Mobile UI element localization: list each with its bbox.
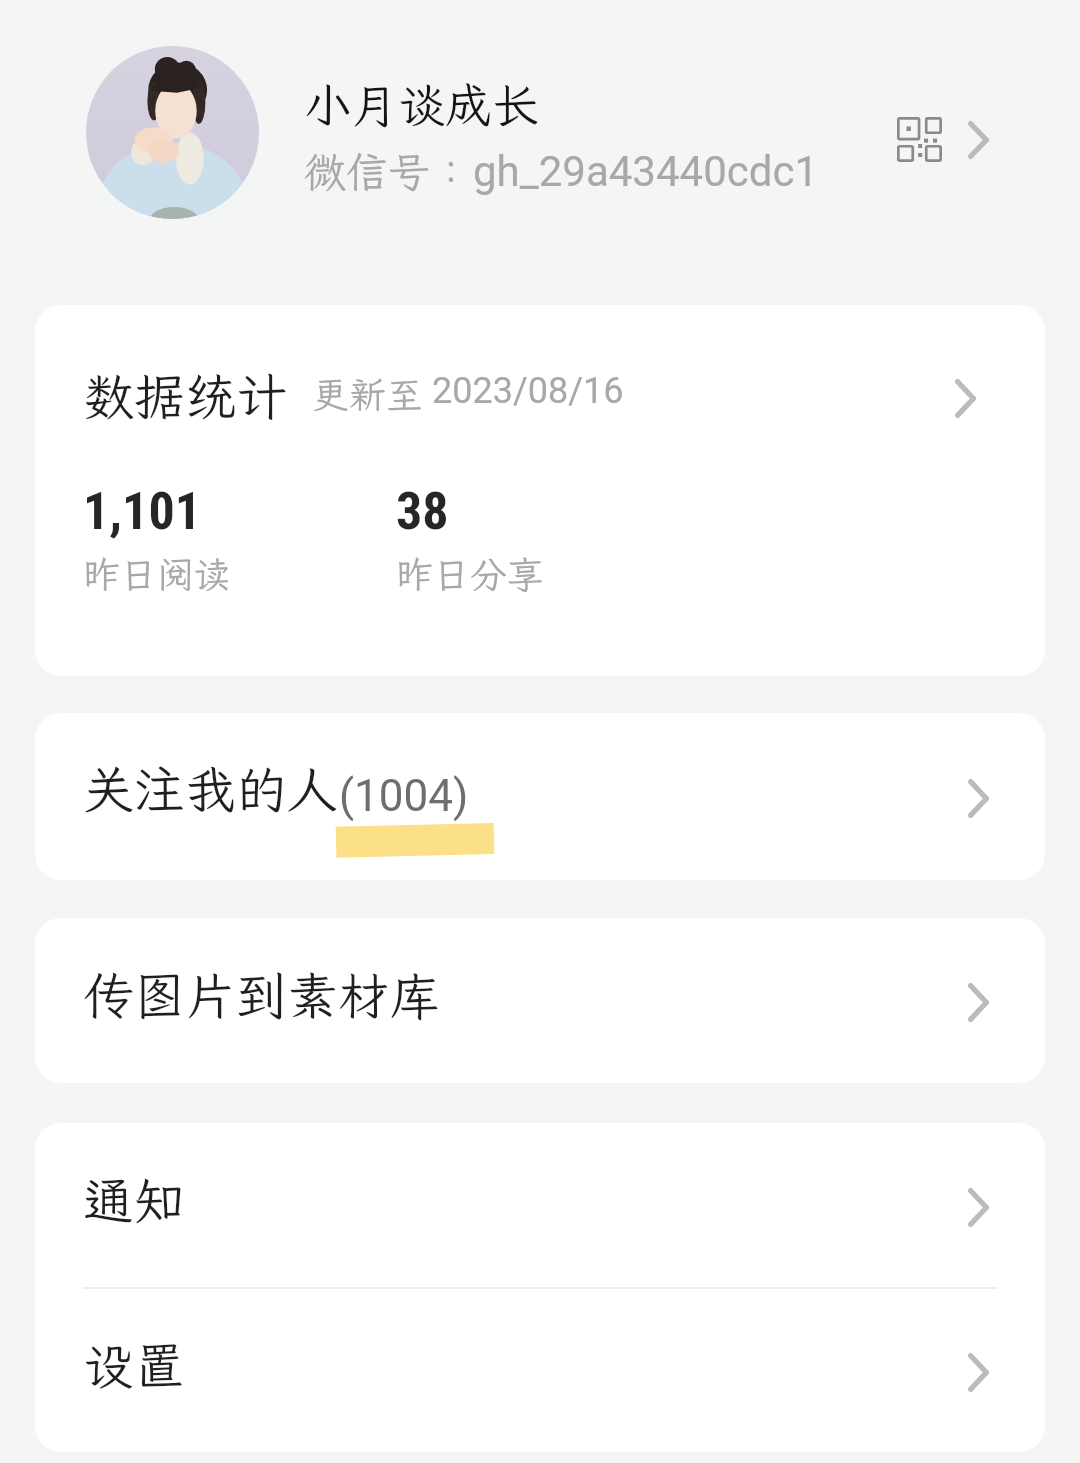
staticText: 2023/08/16 — [432, 370, 624, 412]
staticText: 设置 — [83, 1331, 186, 1398]
staticText: 昨日分享 — [396, 550, 544, 599]
button[interactable]: 小月谈成长 — [0, 0, 1080, 262]
staticText: 小月谈成长 — [304, 73, 539, 135]
staticText: gh_29a43440cdc1 — [473, 147, 819, 196]
staticText: 传图片到素材库 — [83, 961, 441, 1028]
staticText: (1004) — [339, 770, 469, 822]
button[interactable]: 数据统计 — [35, 305, 1045, 470]
staticText: 关注我的人 — [83, 755, 339, 822]
button[interactable]: 关注我的人 — [35, 713, 1045, 880]
staticText: 微信号： — [304, 144, 473, 199]
button[interactable]: 传图片到素材库 — [35, 918, 1045, 1083]
staticText: 通知 — [83, 1166, 186, 1233]
staticText: 38 — [396, 481, 449, 542]
other: QR code — [897, 117, 942, 162]
staticText: 更新至 — [312, 370, 423, 419]
button[interactable]: 通知 — [35, 1123, 1045, 1287]
staticText: 1,101 — [83, 481, 201, 542]
button[interactable]: 设置 — [35, 1289, 1045, 1452]
staticText: 昨日阅读 — [83, 550, 231, 599]
staticText: 数据统计 — [83, 362, 288, 429]
